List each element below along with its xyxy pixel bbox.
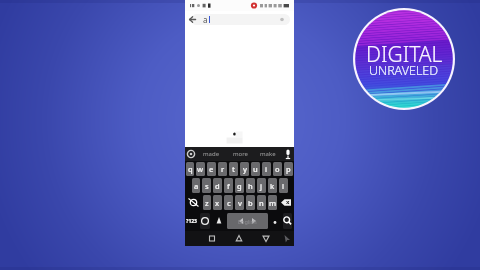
staticText: b	[248, 198, 253, 208]
staticText: e	[209, 164, 214, 174]
button[interactable]: Space	[227, 213, 268, 229]
button[interactable]: q	[186, 162, 194, 176]
staticText: i	[265, 164, 268, 174]
button[interactable]: o	[273, 162, 282, 176]
staticText: d	[215, 181, 220, 191]
staticText: made	[203, 150, 220, 158]
staticText: g	[237, 181, 242, 191]
staticText: l	[282, 181, 285, 191]
button[interactable]: w	[196, 162, 205, 176]
button[interactable]: Search	[283, 213, 292, 229]
button[interactable]: a	[192, 178, 200, 193]
staticText: k	[270, 181, 275, 191]
button[interactable]: l	[279, 178, 288, 193]
button[interactable]: g	[235, 178, 244, 193]
button[interactable]: made	[197, 147, 226, 161]
button[interactable]: x	[213, 195, 222, 210]
button[interactable]	[191, 14, 290, 25]
staticText: UNRAVELED	[369, 62, 439, 79]
button[interactable]: Voice input	[282, 147, 294, 161]
button[interactable]: more	[226, 147, 254, 161]
button[interactable]: Recents	[206, 231, 218, 246]
button[interactable]: f	[224, 178, 233, 193]
staticText: c	[227, 198, 231, 208]
button[interactable]: m	[268, 195, 277, 210]
button[interactable]: p	[284, 162, 293, 176]
button[interactable]: Symbols	[212, 211, 226, 231]
staticText: h	[248, 181, 253, 191]
staticText: t	[232, 164, 235, 174]
button[interactable]: r	[218, 162, 227, 176]
button[interactable]: Backspace	[279, 195, 293, 210]
button[interactable]: s	[202, 178, 211, 193]
staticText: z	[205, 198, 209, 208]
staticText: s	[205, 181, 209, 191]
button[interactable]: d	[213, 178, 222, 193]
button[interactable]: Back	[260, 231, 272, 246]
staticText: English	[238, 218, 257, 225]
staticText: w	[197, 164, 204, 174]
staticText: y	[243, 164, 247, 174]
staticText: more	[233, 150, 248, 158]
button[interactable]: y	[240, 162, 249, 176]
staticText: p	[286, 164, 291, 174]
button[interactable]: Shift	[186, 195, 201, 210]
button[interactable]: v	[235, 195, 244, 210]
staticText: n	[259, 198, 264, 208]
staticText: r	[221, 164, 225, 174]
button[interactable]: z	[203, 195, 211, 210]
button[interactable]: e	[207, 162, 216, 176]
button[interactable]: Back	[187, 14, 198, 25]
button[interactable]: k	[268, 178, 277, 193]
staticText: a	[203, 14, 208, 25]
staticText: DIGITAL	[366, 40, 443, 69]
staticText: a	[194, 181, 199, 191]
staticText: o	[275, 164, 280, 174]
button[interactable]: j	[257, 178, 266, 193]
button[interactable]: h	[246, 178, 255, 193]
staticText: j	[260, 181, 263, 191]
button[interactable]: Home	[233, 231, 245, 246]
staticText: m	[269, 198, 277, 208]
staticText: ?123	[186, 218, 197, 225]
button[interactable]: Period	[269, 211, 281, 231]
staticText: q	[188, 164, 193, 174]
staticText: make	[260, 150, 276, 158]
button[interactable]: t	[229, 162, 238, 176]
staticText: u	[253, 164, 258, 174]
button[interactable]: Emoji	[200, 213, 210, 229]
button[interactable]: b	[246, 195, 255, 210]
button[interactable]: make	[254, 147, 282, 161]
button[interactable]: i	[262, 162, 271, 176]
button[interactable]: ?123	[185, 211, 198, 231]
button[interactable]: n	[257, 195, 266, 210]
button[interactable]: c	[224, 195, 233, 210]
staticText: x	[215, 198, 220, 208]
staticText: f	[227, 181, 230, 191]
staticText: v	[238, 198, 242, 208]
button[interactable]: u	[251, 162, 260, 176]
button[interactable]: Keyboard settings	[185, 147, 197, 161]
